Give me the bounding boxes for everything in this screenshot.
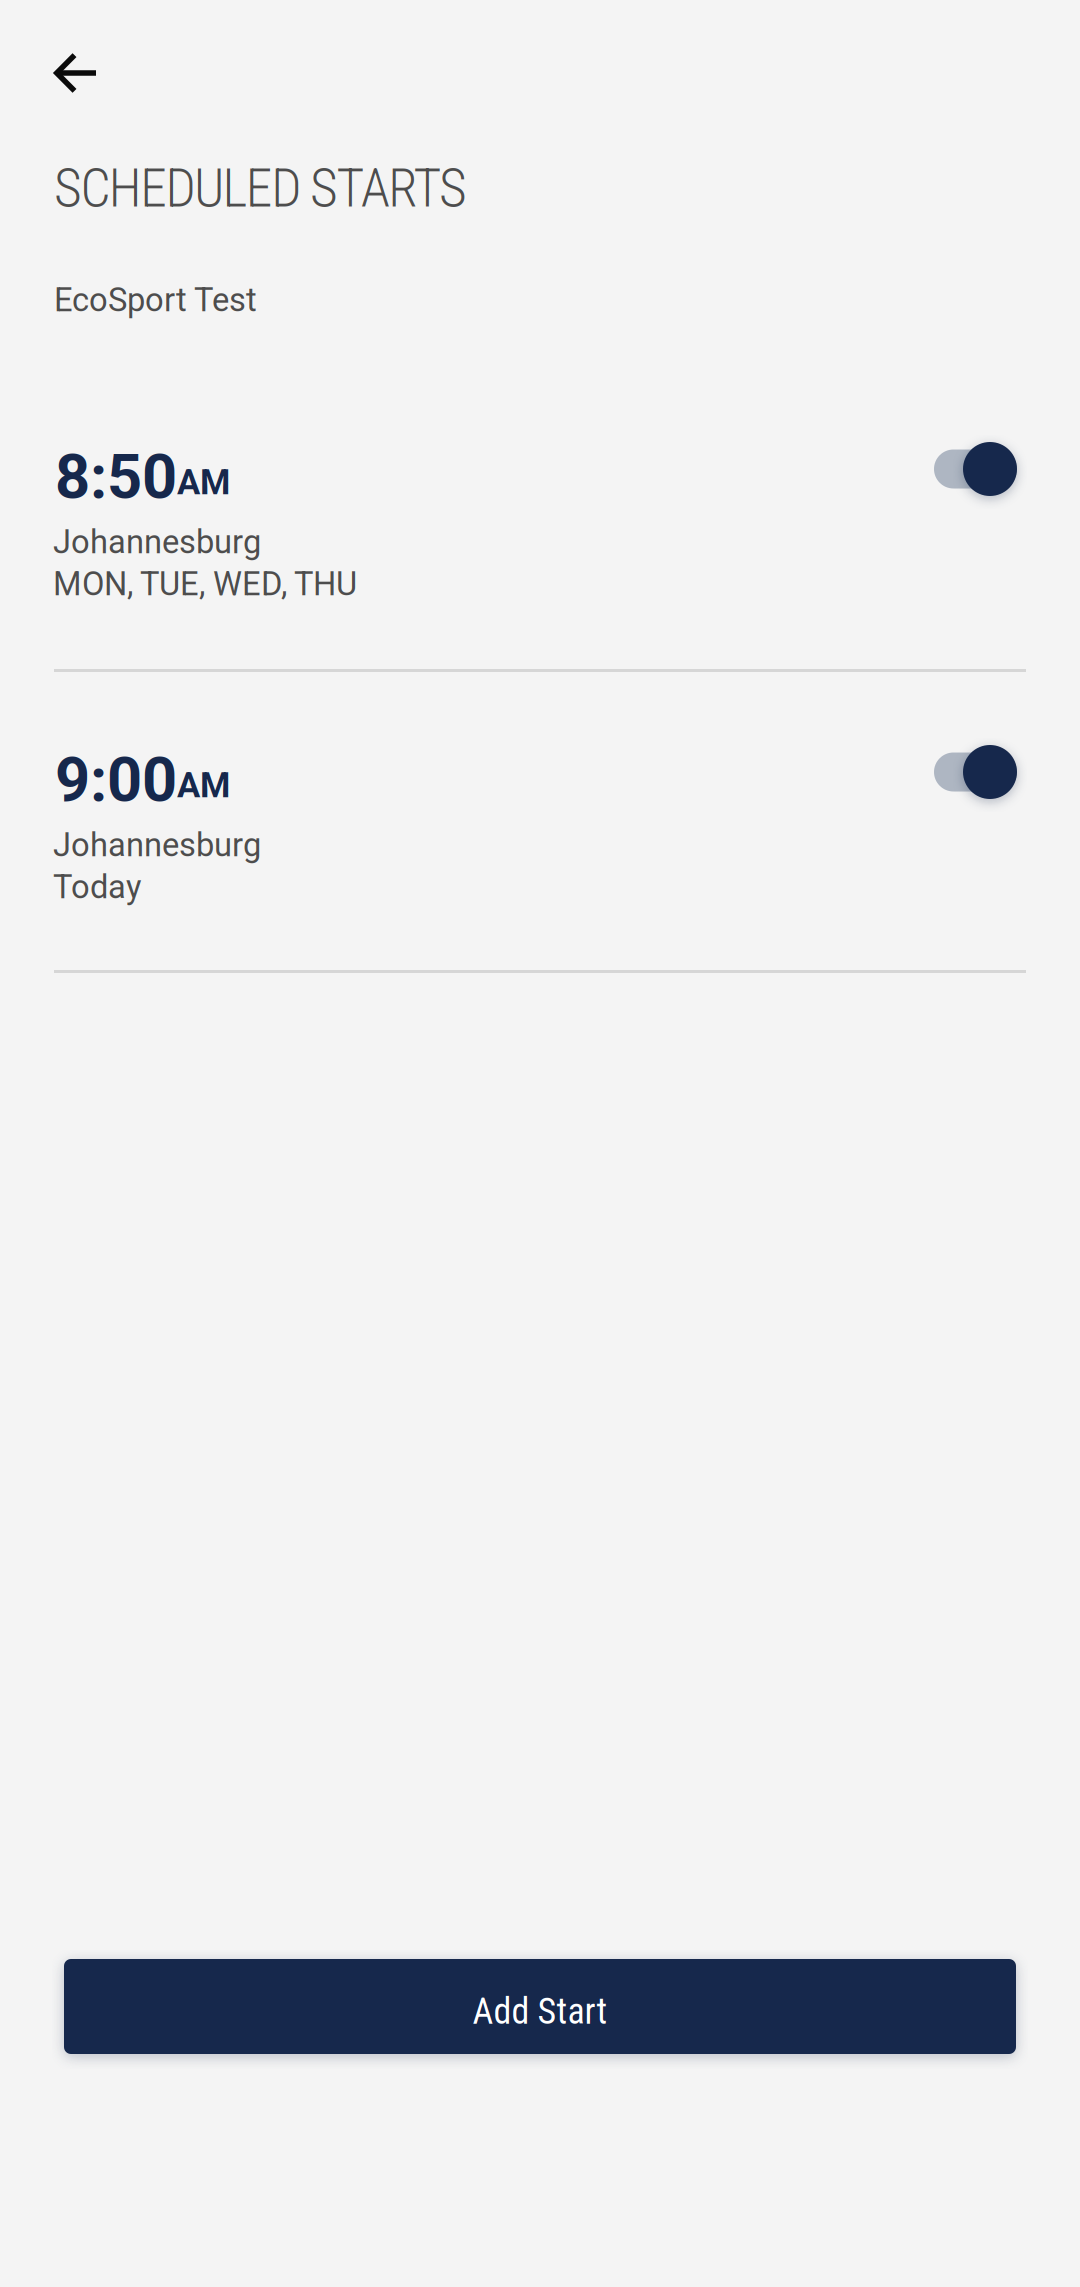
staticText: Add Start: [472, 1990, 607, 2033]
staticText: 8:50: [55, 441, 177, 513]
staticText: AM: [177, 462, 230, 503]
staticText: 9:00: [55, 744, 177, 816]
staticText: MON, TUE, WED, THU: [53, 565, 357, 603]
staticText: EcoSport Test: [54, 281, 257, 319]
staticText: Today: [53, 868, 141, 906]
button[interactable]: Add Start: [64, 1959, 1016, 2054]
staticText: Johannesburg: [53, 826, 261, 864]
button[interactable]: 8:50: [54, 441, 1026, 669]
staticText: Johannesburg: [53, 523, 261, 561]
button[interactable]: Back: [54, 52, 96, 94]
staticText: SCHEDULED STARTS: [54, 157, 467, 219]
button[interactable]: 9:00: [54, 744, 1026, 972]
staticText: AM: [177, 765, 230, 806]
